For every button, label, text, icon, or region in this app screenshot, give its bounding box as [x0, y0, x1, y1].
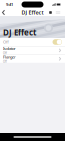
- staticText: Off: [3, 39, 9, 45]
- staticText: DJ Effect: [3, 27, 36, 38]
- button[interactable]: Flanger: [0, 55, 65, 63]
- staticText: Isolator: [3, 46, 16, 51]
- staticText: Off: [3, 51, 7, 55]
- button[interactable]: Isolator: [0, 46, 65, 54]
- staticText: Flanger: [3, 54, 16, 59]
- button[interactable]: Back: [0, 9, 12, 16]
- button[interactable]: Menu: [54, 9, 62, 16]
- staticText: 9:41: [6, 2, 13, 7]
- button[interactable]: Off: [0, 38, 65, 46]
- staticText: Off: [3, 60, 7, 63]
- button[interactable]: Record: [47, 9, 54, 16]
- staticText: DJ Effect: [21, 9, 43, 16]
